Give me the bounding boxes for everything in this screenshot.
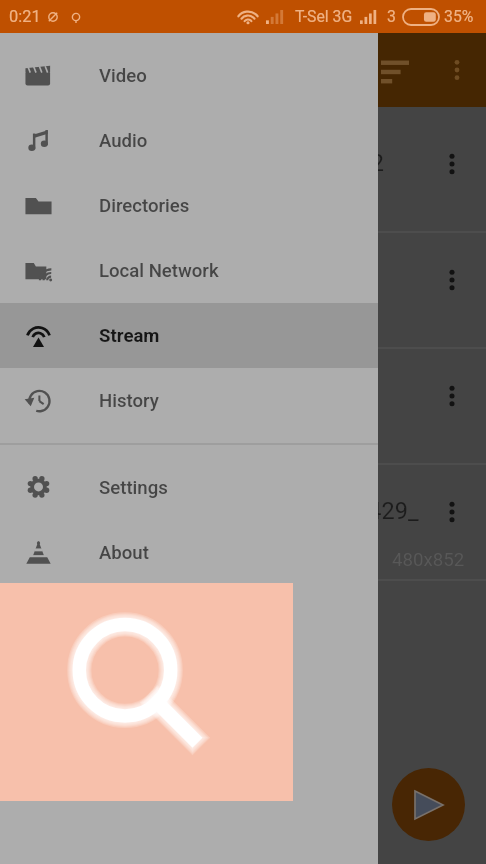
staticText: VID_20150503_10341 [141,265,371,293]
button[interactable]: Local Network [0,238,378,303]
staticText: Local Network [99,260,219,282]
button[interactable]: Audio [0,108,378,173]
button[interactable]: History [0,368,378,433]
staticText: VID_20150504_100429_ [165,497,419,525]
button[interactable]: Sort [370,45,420,95]
staticText: Stream [99,325,160,347]
staticText: Directories [99,195,190,217]
staticText: Audio [99,130,148,152]
staticText: Settings [99,477,168,499]
staticText: VID_20150503_19150 [141,381,371,409]
staticText: T-Sel 3G [295,7,353,26]
staticText: 35% [444,7,474,26]
staticText: 3 [387,7,396,26]
button[interactable]: VID_20150504_100429_ [0,465,486,581]
button[interactable]: More options [432,45,482,95]
button[interactable]: Item menu [429,373,475,419]
button[interactable]: About [0,520,378,585]
button[interactable]: Video [0,43,378,108]
button[interactable]: Play [392,768,465,841]
button[interactable]: Item menu [429,489,475,535]
staticText: VLC [72,55,119,85]
button[interactable]: VID_20150503_10341 [0,233,486,349]
button[interactable]: Stream [0,303,378,368]
staticText: History [99,390,159,412]
button[interactable]: Search [0,583,293,801]
button[interactable]: VID_20150503_19150 [0,349,486,465]
button[interactable]: Directories [0,173,378,238]
button[interactable]: VID_20150502_232312 [0,117,486,233]
staticText: 0:21 [9,7,41,26]
button[interactable]: Item menu [429,141,475,187]
staticText: 480x852 [392,549,465,571]
staticText: Video [99,65,147,87]
button[interactable]: Item menu [429,257,475,303]
staticText: VID_20150502_232312 [141,149,384,177]
staticText: About [99,542,149,564]
button[interactable]: Settings [0,455,378,520]
